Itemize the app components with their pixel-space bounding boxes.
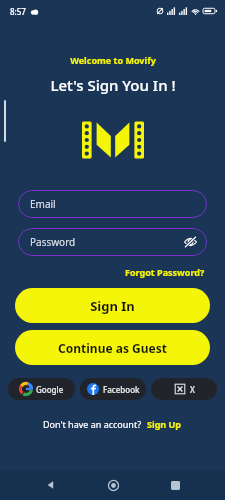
staticText: Sign Up xyxy=(147,418,182,430)
button[interactable]: Google xyxy=(8,378,75,400)
staticText: Email xyxy=(30,197,56,211)
staticText: Let's Sign You In ! xyxy=(50,75,176,95)
staticText: Welcome to Movify xyxy=(70,54,156,66)
staticText: X xyxy=(190,384,195,395)
staticText: Password xyxy=(30,235,76,249)
button[interactable]: X xyxy=(151,378,217,400)
button[interactable]: Continue as Guest xyxy=(15,330,210,365)
button[interactable]: Sign In xyxy=(15,288,210,323)
button[interactable]: Home xyxy=(91,470,135,500)
staticText: Google xyxy=(36,384,64,395)
staticText: Sign In xyxy=(90,297,135,315)
button[interactable]: Facebook xyxy=(80,378,146,400)
staticText: Continue as Guest xyxy=(58,340,167,356)
button[interactable]: Sign Up xyxy=(146,416,183,432)
staticText: 8:57 xyxy=(10,6,26,17)
button[interactable]: Recent apps xyxy=(153,470,197,500)
staticText: Forgot Password? xyxy=(125,266,205,278)
button[interactable]: Back xyxy=(29,470,73,500)
button[interactable]: Show password xyxy=(181,233,199,251)
button[interactable]: Password xyxy=(18,228,207,256)
staticText: Don't have an account? xyxy=(43,418,142,430)
staticText: Facebook xyxy=(103,384,140,395)
button[interactable]: Email xyxy=(18,190,207,218)
button[interactable]: Forgot Password? xyxy=(123,264,207,280)
